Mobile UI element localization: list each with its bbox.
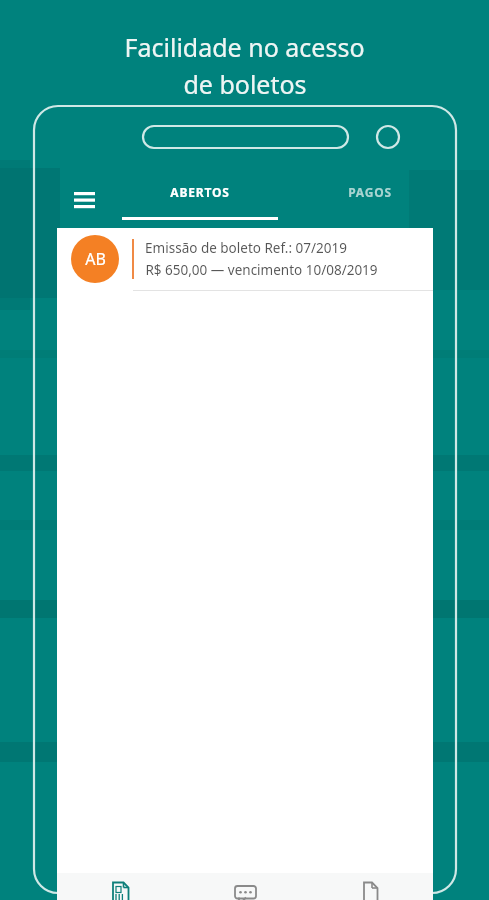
staticText: PAGOS (348, 184, 392, 200)
button[interactable]: Avisos (183, 873, 308, 900)
button[interactable]: Menu (69, 183, 101, 215)
button[interactable]: PAGOS (300, 178, 440, 220)
button[interactable]: Boletos (57, 873, 183, 900)
button[interactable]: AB (57, 228, 433, 290)
button[interactable]: ABERTOS (122, 178, 278, 220)
staticText: AB (85, 248, 106, 270)
staticText: Emissão de boleto Ref.: 07/2019 (145, 239, 347, 257)
staticText: ABERTOS (170, 184, 230, 200)
staticText: R$ 650,00 — vencimento 10/08/2019 (145, 261, 378, 279)
button[interactable]: Documentos (308, 873, 433, 900)
staticText: Facilidade no acesso (124, 30, 365, 64)
staticText: de boletos (183, 67, 307, 101)
